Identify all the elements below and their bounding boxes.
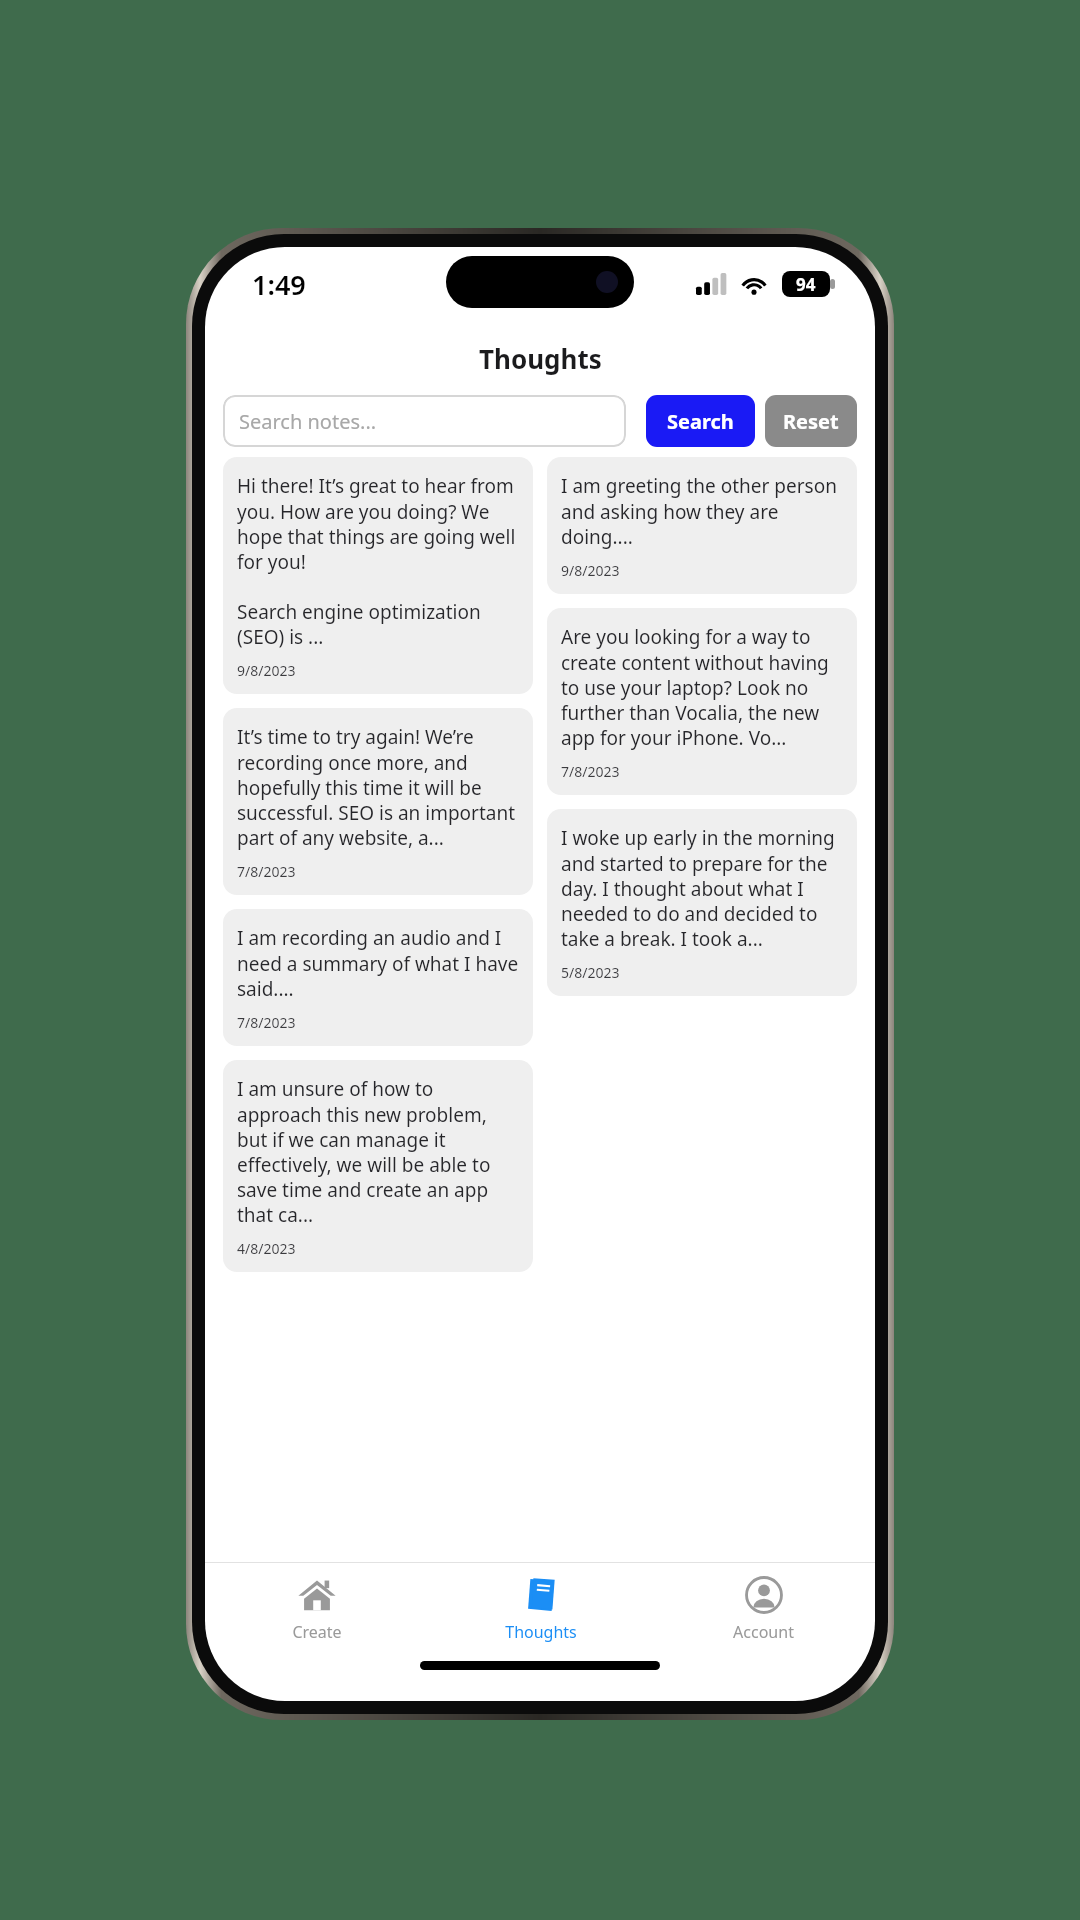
staticText: Account (733, 1621, 794, 1643)
other: Create (298, 1576, 336, 1614)
staticText: I am greeting the other person and askin… (561, 473, 845, 549)
button[interactable]: Account (652, 1563, 875, 1655)
staticText: Are you looking for a way to create cont… (561, 624, 845, 750)
staticText: Thoughts (479, 341, 602, 376)
staticText: 7/8/2023 (561, 762, 620, 781)
staticText: I am recording an audio and I need a sum… (237, 925, 521, 1001)
other: Thoughts (522, 1576, 560, 1614)
button[interactable]: Hi there! It’s great to hear from you. H… (223, 457, 533, 694)
button[interactable]: Create (205, 1563, 429, 1655)
staticText: Reset (783, 408, 839, 435)
staticText: 5/8/2023 (561, 963, 620, 982)
button[interactable]: It’s time to try again! We’re recording … (223, 708, 533, 895)
staticText: Search notes... (239, 408, 377, 435)
staticText: Create (292, 1621, 342, 1643)
staticText: Search (667, 408, 734, 435)
staticText: It’s time to try again! We’re recording … (237, 724, 521, 850)
button[interactable]: Search (646, 395, 755, 447)
staticText: Thoughts (505, 1621, 577, 1643)
button[interactable]: I am recording an audio and I need a sum… (223, 909, 533, 1046)
button[interactable]: Thoughts (429, 1563, 652, 1655)
button[interactable]: Are you looking for a way to create cont… (547, 608, 857, 795)
staticText: 9/8/2023 (561, 561, 620, 580)
button[interactable]: I am greeting the other person and askin… (547, 457, 857, 594)
staticText: 7/8/2023 (237, 862, 296, 881)
button[interactable]: Search notes... (223, 395, 626, 447)
staticText: 4/8/2023 (237, 1239, 296, 1258)
button[interactable]: Reset (765, 395, 857, 447)
button[interactable]: I am unsure of how to approach this new … (223, 1060, 533, 1272)
other: Account (745, 1576, 783, 1614)
staticText: 94 (796, 273, 816, 296)
staticText: I am unsure of how to approach this new … (237, 1076, 521, 1227)
staticText: 7/8/2023 (237, 1013, 296, 1032)
staticText: I woke up early in the morning and start… (561, 825, 845, 951)
button[interactable]: I woke up early in the morning and start… (547, 809, 857, 996)
staticText: 9/8/2023 (237, 661, 296, 680)
staticText: Hi there! It’s great to hear from you. H… (237, 473, 521, 649)
staticText: 1:49 (252, 266, 306, 303)
